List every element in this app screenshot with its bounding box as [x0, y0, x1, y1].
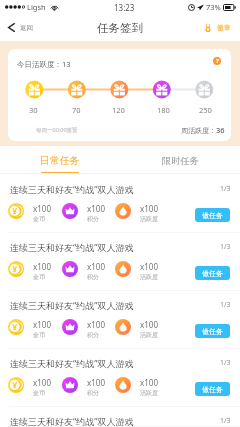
staticText: x100 [33, 377, 51, 388]
button[interactable]: 做任务 [195, 324, 230, 338]
staticText: 做任务 [202, 211, 223, 220]
staticText: 任务签到 [97, 21, 143, 35]
staticText: 连续三天和好友“约战”双人游戏 [10, 183, 134, 195]
button[interactable]: 连续三天和好友“约战”双人游戏 [0, 175, 240, 233]
button[interactable]: 连续三天和好友“约战”双人游戏 [0, 349, 240, 407]
button[interactable]: 连续三天和好友“约战”双人游戏 [0, 291, 240, 349]
staticText: 120 [112, 105, 125, 115]
staticText: 1/3 [220, 416, 231, 426]
staticText: 活跃度 [140, 389, 158, 397]
staticText: 连续三天和好友“约战”双人游戏 [10, 357, 134, 369]
staticText: 限时任务 [162, 155, 199, 167]
staticText: 做任务 [202, 385, 223, 394]
button[interactable]: 做任务 [195, 208, 230, 222]
staticText: 73% [206, 2, 221, 12]
staticText: 今日活跃度：13 [17, 59, 71, 69]
staticText: 日常任务 [40, 155, 80, 167]
staticText: 30 [29, 105, 38, 115]
staticText: 积分 [87, 331, 99, 339]
staticText: 金币 [33, 389, 45, 397]
staticText: x100 [87, 377, 105, 388]
staticText: 1/3 [220, 242, 231, 252]
staticText: 1/3 [220, 300, 231, 310]
staticText: 1/3 [220, 358, 231, 368]
staticText: ? [216, 57, 219, 65]
staticText: x100 [33, 319, 51, 330]
staticText: 周活跃度： [181, 126, 216, 135]
staticText: Ligsh [27, 2, 46, 12]
button[interactable]: 徽章 [197, 14, 240, 41]
staticText: 金币 [33, 215, 45, 223]
staticText: x100 [140, 203, 158, 214]
staticText: 积分 [87, 215, 99, 223]
staticText: x100 [140, 319, 158, 330]
staticText: 活跃度 [140, 215, 158, 223]
staticText: x100 [140, 261, 158, 272]
staticText: 250 [199, 105, 212, 115]
staticText: 36 [216, 125, 225, 135]
staticText: 连续三天和好友“约战”双人游戏 [10, 241, 134, 253]
button[interactable]: 日常任务 [0, 146, 120, 173]
staticText: 1/3 [220, 184, 231, 194]
staticText: x100 [140, 377, 158, 388]
button[interactable]: 返回 [0, 14, 41, 41]
staticText: 每周一00:00重置 [36, 126, 78, 134]
staticText: 积分 [87, 273, 99, 281]
staticText: x100 [87, 261, 105, 272]
button[interactable]: 连续三天和好友“约战”双人游戏 [0, 407, 240, 427]
staticText: 活跃度 [140, 331, 158, 339]
button[interactable]: 做任务 [195, 382, 230, 396]
staticText: 70 [72, 105, 81, 115]
button[interactable]: 限时任务 [120, 146, 240, 173]
button[interactable]: Help [213, 57, 221, 65]
staticText: 做任务 [202, 327, 223, 336]
staticText: 180 [157, 105, 170, 115]
staticText: 金币 [33, 331, 45, 339]
staticText: 连续三天和好友“约战”双人游戏 [10, 299, 134, 311]
staticText: 返回 [20, 24, 33, 32]
staticText: 徽章 [217, 23, 231, 32]
staticText: x100 [87, 319, 105, 330]
staticText: 13:23 [114, 2, 135, 13]
staticText: x100 [33, 261, 51, 272]
staticText: 积分 [87, 389, 99, 397]
button[interactable]: 连续三天和好友“约战”双人游戏 [0, 233, 240, 291]
staticText: x100 [33, 203, 51, 214]
staticText: 连续三天和好友“约战”双人游戏 [10, 415, 134, 427]
button[interactable]: 做任务 [195, 266, 230, 280]
staticText: 活跃度 [140, 273, 158, 281]
staticText: 做任务 [202, 269, 223, 278]
staticText: x100 [87, 203, 105, 214]
staticText: 金币 [33, 273, 45, 281]
